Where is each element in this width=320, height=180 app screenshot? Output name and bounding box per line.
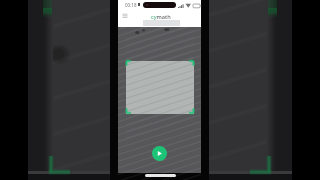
button[interactable]: Menu — [120, 12, 130, 19]
button[interactable]: Capture — [152, 146, 167, 161]
button[interactable]: cymath — [151, 13, 171, 21]
staticText: 00:18 — [125, 2, 137, 8]
